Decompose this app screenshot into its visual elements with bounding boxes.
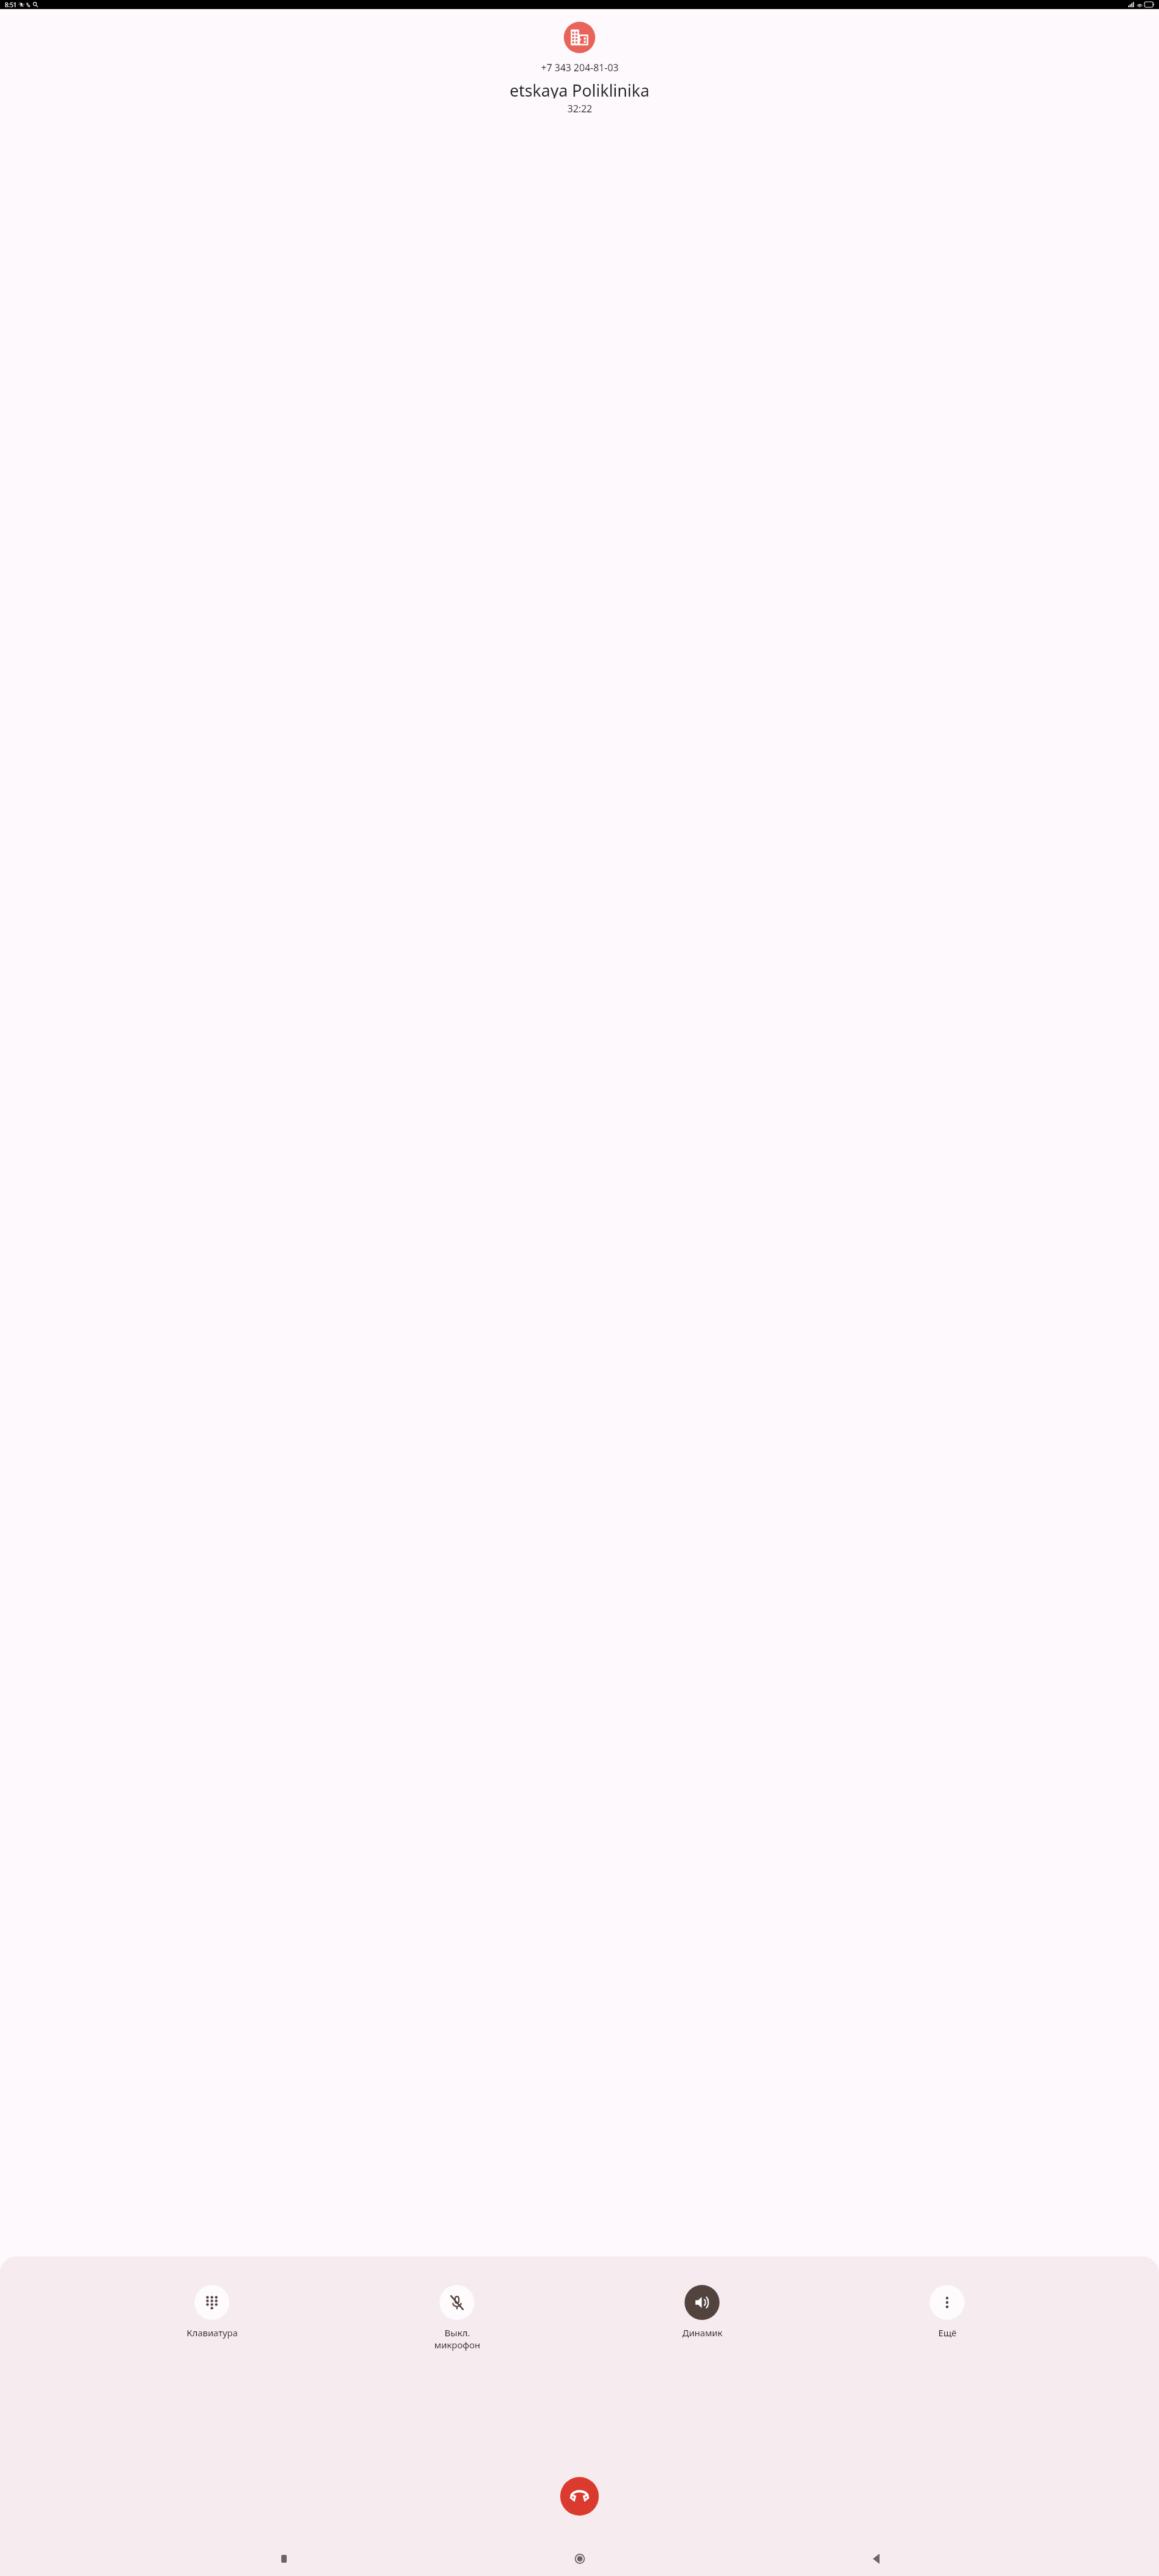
button[interactable]: Выкл. микрофон	[424, 2285, 490, 2351]
button[interactable]: Динамик	[669, 2285, 735, 2339]
staticText: etskaya Poliklinika	[509, 79, 650, 98]
staticText: Клавиатура	[187, 2327, 238, 2339]
staticText: Выкл. микрофон	[434, 2327, 481, 2351]
button[interactable]: Back	[863, 2547, 889, 2570]
button[interactable]: Recents	[271, 2547, 296, 2570]
button[interactable]: End call	[560, 2477, 599, 2516]
staticText: Динамик	[682, 2327, 723, 2339]
staticText: 32:22	[567, 102, 592, 115]
staticText: +7 343 204-81-03	[541, 61, 619, 74]
button[interactable]: Home	[567, 2547, 592, 2570]
button[interactable]: Клавиатура	[179, 2285, 245, 2339]
staticText: 8:51	[5, 1, 17, 9]
button[interactable]: Ещё	[914, 2285, 980, 2339]
staticText: Ещё	[938, 2327, 957, 2339]
